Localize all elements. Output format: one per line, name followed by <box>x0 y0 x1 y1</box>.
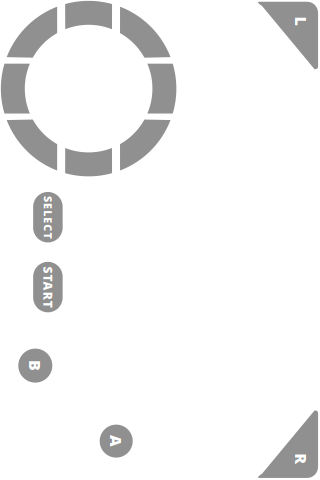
button[interactable]: START <box>33 262 63 312</box>
staticText: START <box>27 279 69 295</box>
staticText: A <box>110 430 122 452</box>
button[interactable]: SELECT <box>33 192 63 242</box>
button[interactable]: R <box>256 410 318 478</box>
staticText: SELECT <box>27 210 69 224</box>
button[interactable]: A <box>100 425 133 458</box>
button[interactable]: L <box>256 2 318 69</box>
button[interactable]: D-pad <box>1 1 176 176</box>
staticText: L <box>297 10 306 32</box>
staticText: B <box>30 355 41 376</box>
staticText: R <box>296 448 307 469</box>
button[interactable]: B <box>18 349 52 383</box>
